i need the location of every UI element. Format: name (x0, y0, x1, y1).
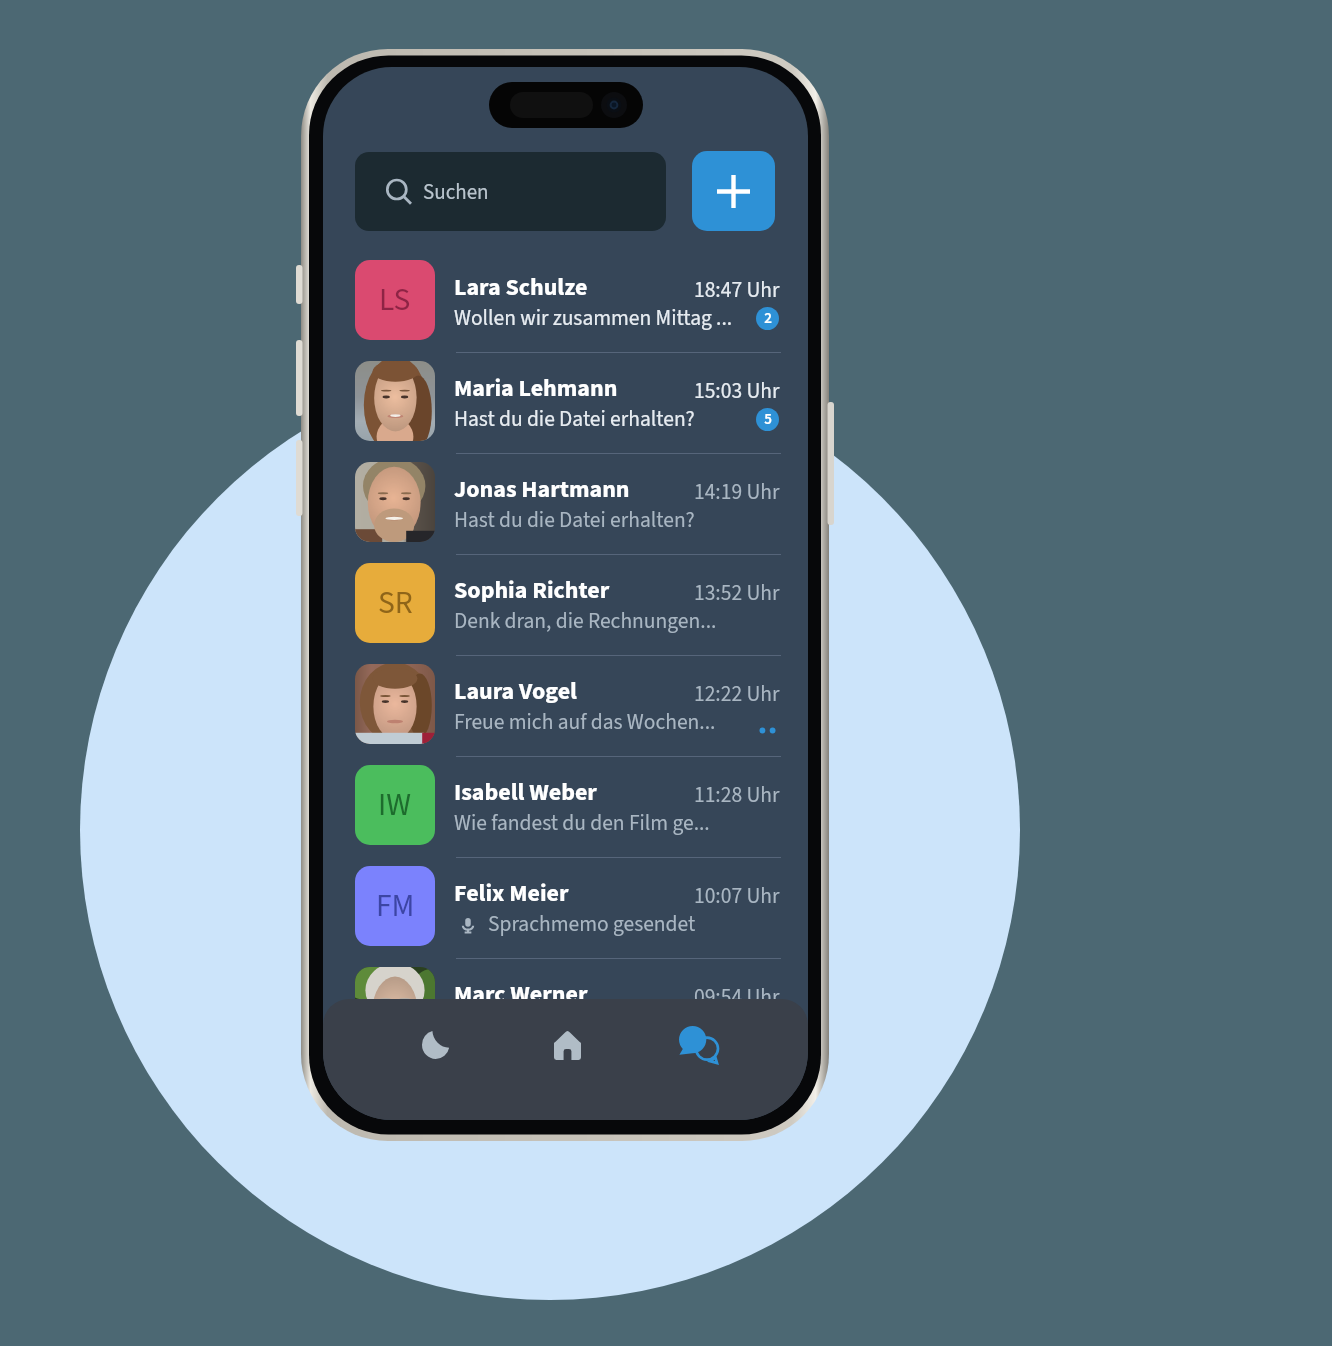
staticText: 15:03 Uhr (694, 376, 780, 407)
staticText: 13:52 Uhr (694, 578, 780, 609)
staticText: Hast du die Datei erhalten? (454, 404, 695, 435)
staticText: Jonas Hartmann (454, 472, 630, 506)
button[interactable]: Marc Werner (323, 959, 808, 1060)
button[interactable]: IW (323, 757, 808, 858)
staticText: 09:54 Uhr (694, 982, 780, 1013)
staticText: Sprachmemo gesendet (488, 909, 696, 940)
staticText: 11:28 Uhr (694, 780, 780, 811)
button[interactable]: Laura Vogel (323, 656, 808, 757)
staticText: Laura Vogel (454, 674, 577, 708)
staticText: 18:47 Uhr (694, 275, 780, 306)
staticText: 14:19 Uhr (694, 477, 780, 508)
staticText: 12:22 Uhr (694, 679, 780, 710)
staticText: SR (378, 581, 413, 626)
button[interactable]: Maria Lehmann (323, 353, 808, 454)
staticText: LS (379, 278, 411, 323)
button[interactable]: LS (323, 252, 808, 353)
staticText: Wie fandest du den Film ge... (454, 808, 710, 839)
staticText: Marc Werner (454, 977, 588, 1011)
button[interactable]: Jonas Hartmann (323, 454, 808, 555)
staticText: Isabell Weber (454, 775, 597, 809)
staticText: Maria Lehmann (454, 371, 618, 405)
staticText: FM (376, 884, 415, 929)
staticText: 5 (764, 409, 772, 430)
staticText: 2 (764, 308, 772, 329)
staticText: Suchen (423, 177, 489, 207)
button[interactable]: Dunkelmodus (399, 1007, 473, 1081)
staticText: Wollen wir zusammen Mittag ... (454, 303, 733, 334)
staticText: Lara Schulze (454, 270, 588, 304)
button[interactable]: Chats (661, 1008, 735, 1082)
staticText: Sophia Richter (454, 573, 610, 607)
button[interactable]: Suchen (355, 152, 666, 231)
staticText: Denk dran, die Rechnungen... (454, 606, 717, 637)
staticText: 10:07 Uhr (694, 881, 780, 912)
staticText: IW (378, 783, 412, 828)
staticText: Freue mich auf das Wochen... (454, 707, 716, 738)
staticText: Felix Meier (454, 876, 569, 910)
button[interactable]: FM (323, 858, 808, 959)
button[interactable]: SR (323, 555, 808, 656)
button[interactable]: Startseite (530, 1008, 604, 1082)
staticText: Hast du die Datei erhalten? (454, 505, 695, 536)
button[interactable]: Neuer Chat (692, 151, 775, 231)
